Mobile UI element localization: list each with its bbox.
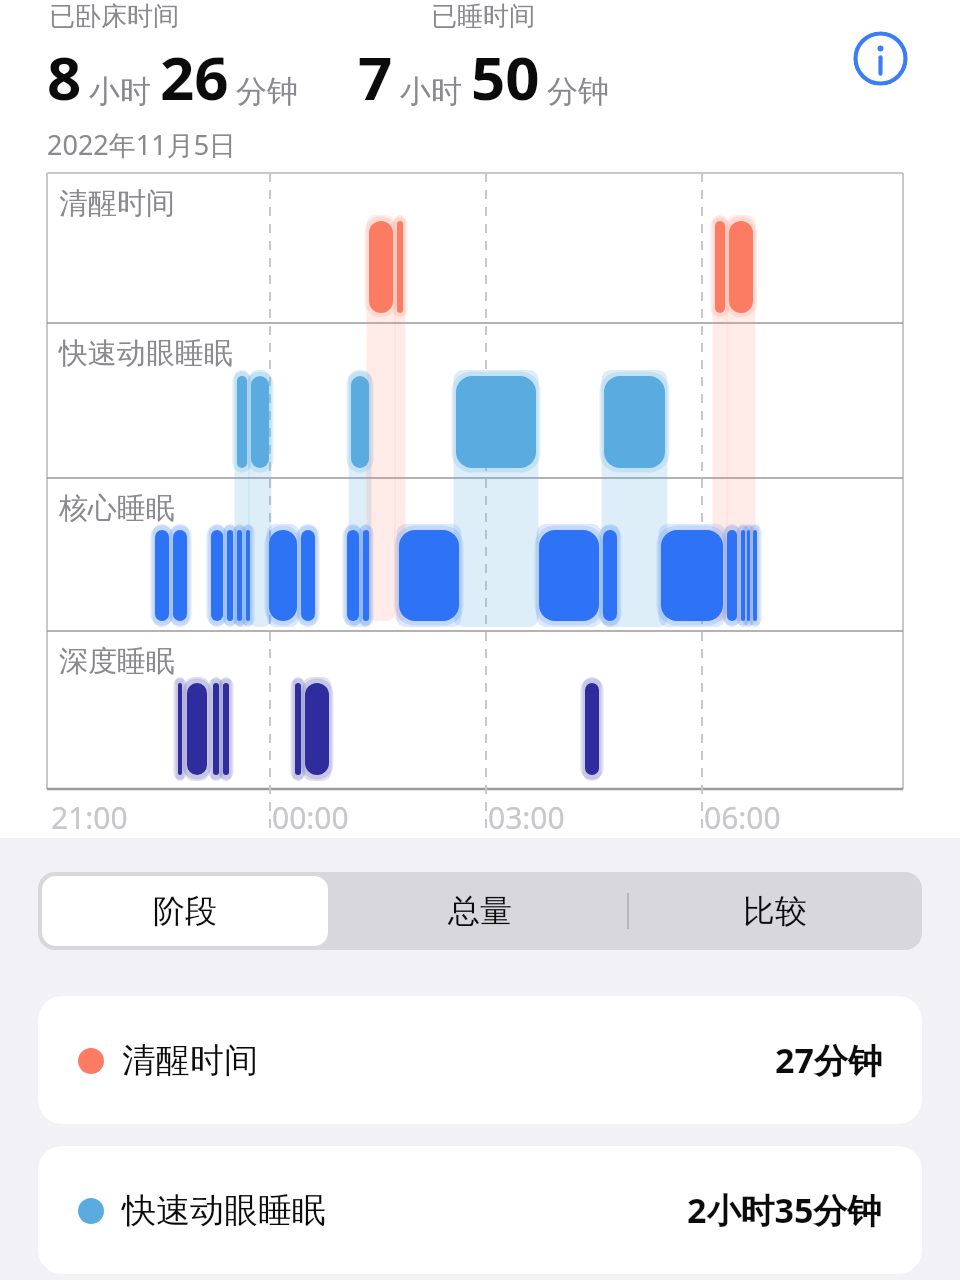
button[interactable]: 总量 <box>332 872 627 950</box>
staticText: 2小时35分钟 <box>687 1187 882 1233</box>
staticText: 快速动眼睡眠 <box>122 1189 326 1232</box>
staticText: 清醒时间 <box>122 1039 258 1082</box>
staticText: 深度睡眠 <box>59 643 175 680</box>
staticText: 2022年11月5日 <box>47 126 237 163</box>
staticText: 8 <box>47 36 82 118</box>
button[interactable]: 信息 <box>853 31 908 86</box>
staticText: 比较 <box>743 891 807 931</box>
button[interactable]: 清醒时间 <box>38 996 922 1124</box>
staticText: 分钟 <box>547 72 609 111</box>
staticText: 已卧床时间 <box>49 0 179 33</box>
staticText: 总量 <box>448 891 512 931</box>
staticText: 21:00 <box>51 797 128 838</box>
button[interactable]: 比较 <box>627 872 922 950</box>
staticText: 分钟 <box>236 72 298 111</box>
staticText: 06:00 <box>704 797 781 838</box>
staticText: 快速动眼睡眠 <box>59 335 233 372</box>
staticText: 小时 <box>89 72 151 111</box>
staticText: 7 <box>358 36 393 118</box>
button[interactable]: 快速动眼睡眠 <box>38 1146 922 1274</box>
staticText: 26 <box>160 36 229 118</box>
staticText: 50 <box>471 36 540 118</box>
staticText: 核心睡眠 <box>59 490 175 527</box>
staticText: 27分钟 <box>775 1037 882 1083</box>
button[interactable]: 阶段 <box>42 876 328 946</box>
staticText: 小时 <box>400 72 462 111</box>
staticText: 03:00 <box>488 797 565 838</box>
staticText: 已睡时间 <box>431 0 535 33</box>
staticText: 00:00 <box>272 797 349 838</box>
staticText: 清醒时间 <box>59 185 175 222</box>
staticText: 阶段 <box>153 891 217 931</box>
